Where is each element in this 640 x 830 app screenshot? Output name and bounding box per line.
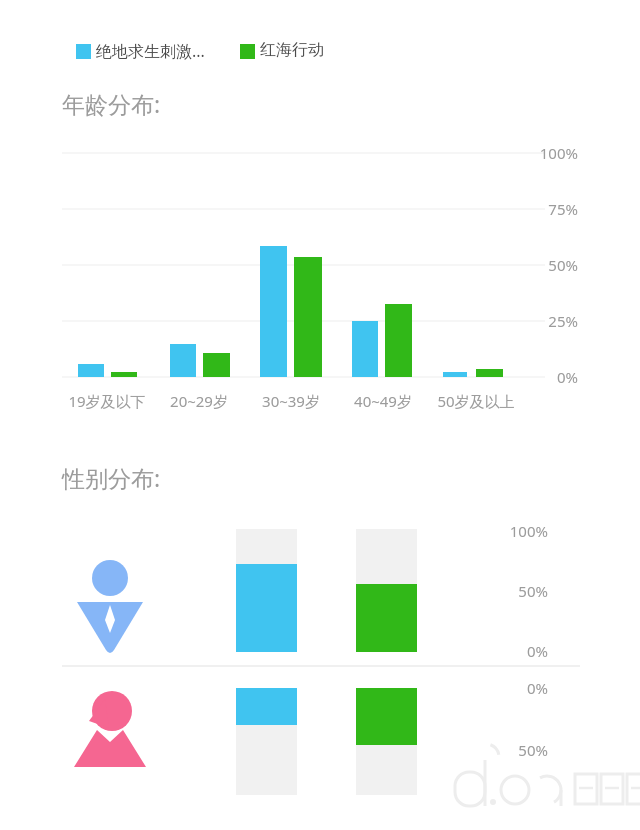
staticText: 40~49岁 [308, 391, 458, 411]
staticText: 100% [468, 143, 578, 163]
staticText: 30~39岁 [216, 391, 366, 411]
button[interactable]: Female [70, 692, 155, 792]
staticText: 0% [438, 678, 548, 698]
staticText: 50% [438, 581, 548, 601]
button[interactable]: 绝地求生刺激... [70, 36, 230, 66]
staticText: 100% [438, 521, 548, 541]
staticText: 75% [468, 199, 578, 219]
staticText: 年龄分布: [62, 88, 282, 119]
staticText: 红海行动 [260, 40, 324, 60]
button[interactable]: 红海行动 [234, 36, 354, 66]
staticText: 0% [468, 367, 578, 387]
staticText: 绝地求生刺激... [96, 40, 205, 62]
staticText: 25% [468, 311, 578, 331]
staticText: 性别分布: [62, 462, 282, 493]
staticText: 20~29岁 [124, 391, 274, 411]
staticText: 19岁及以下 [32, 391, 182, 411]
staticText: 50% [468, 255, 578, 275]
staticText: 50% [438, 740, 548, 760]
staticText: 50岁及以上 [401, 391, 551, 411]
staticText: 0% [438, 641, 548, 661]
button[interactable]: Male [70, 555, 155, 655]
